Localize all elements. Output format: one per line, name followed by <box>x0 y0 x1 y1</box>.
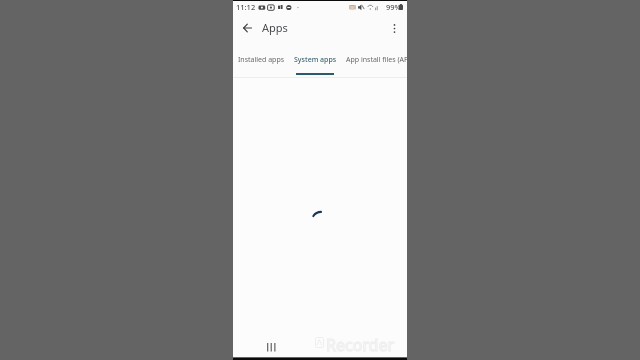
button[interactable]: Recent apps <box>263 339 279 355</box>
button[interactable]: Installed apps <box>234 47 289 76</box>
button[interactable]: App install files (AP <box>340 47 415 76</box>
staticText: Installed apps <box>238 55 285 65</box>
staticText: App install files (AP <box>346 55 409 65</box>
staticText: 11:12 <box>236 2 256 12</box>
button[interactable]: Navigate up <box>236 17 258 39</box>
staticText: System apps <box>294 55 337 65</box>
button[interactable]: More options <box>383 17 405 39</box>
staticText: Apps <box>262 20 288 35</box>
staticText: Recorder <box>326 334 395 356</box>
button[interactable]: System apps <box>292 47 338 76</box>
staticText: 99% <box>386 2 401 12</box>
